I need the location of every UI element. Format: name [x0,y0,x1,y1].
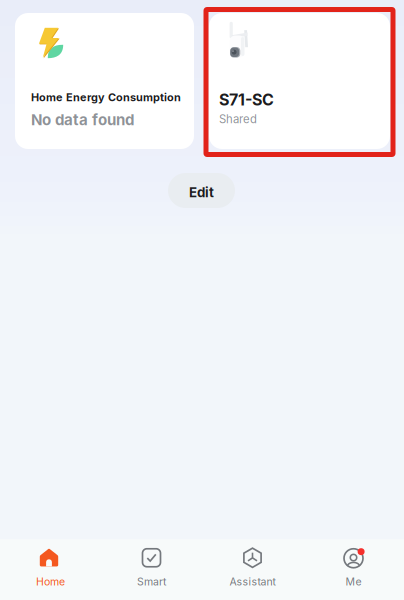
button[interactable]: Smart [101,539,202,600]
button[interactable]: Edit [168,173,235,208]
staticText: Edit [189,184,214,200]
staticText: Smart [137,575,166,588]
staticText: Home [36,575,65,588]
staticText: S71-SC [219,90,274,109]
staticText: Me [345,575,361,588]
button[interactable]: S71-SC [209,13,390,149]
staticText: Shared [219,112,257,126]
button[interactable]: Me [303,539,404,600]
button[interactable]: Home Energy Consumption [15,13,194,149]
button[interactable]: Home [0,539,101,600]
staticText: Home Energy Consumption [31,90,181,104]
button[interactable]: Assistant [202,539,303,600]
staticText: No data found [31,111,134,129]
staticText: Assistant [229,575,275,588]
